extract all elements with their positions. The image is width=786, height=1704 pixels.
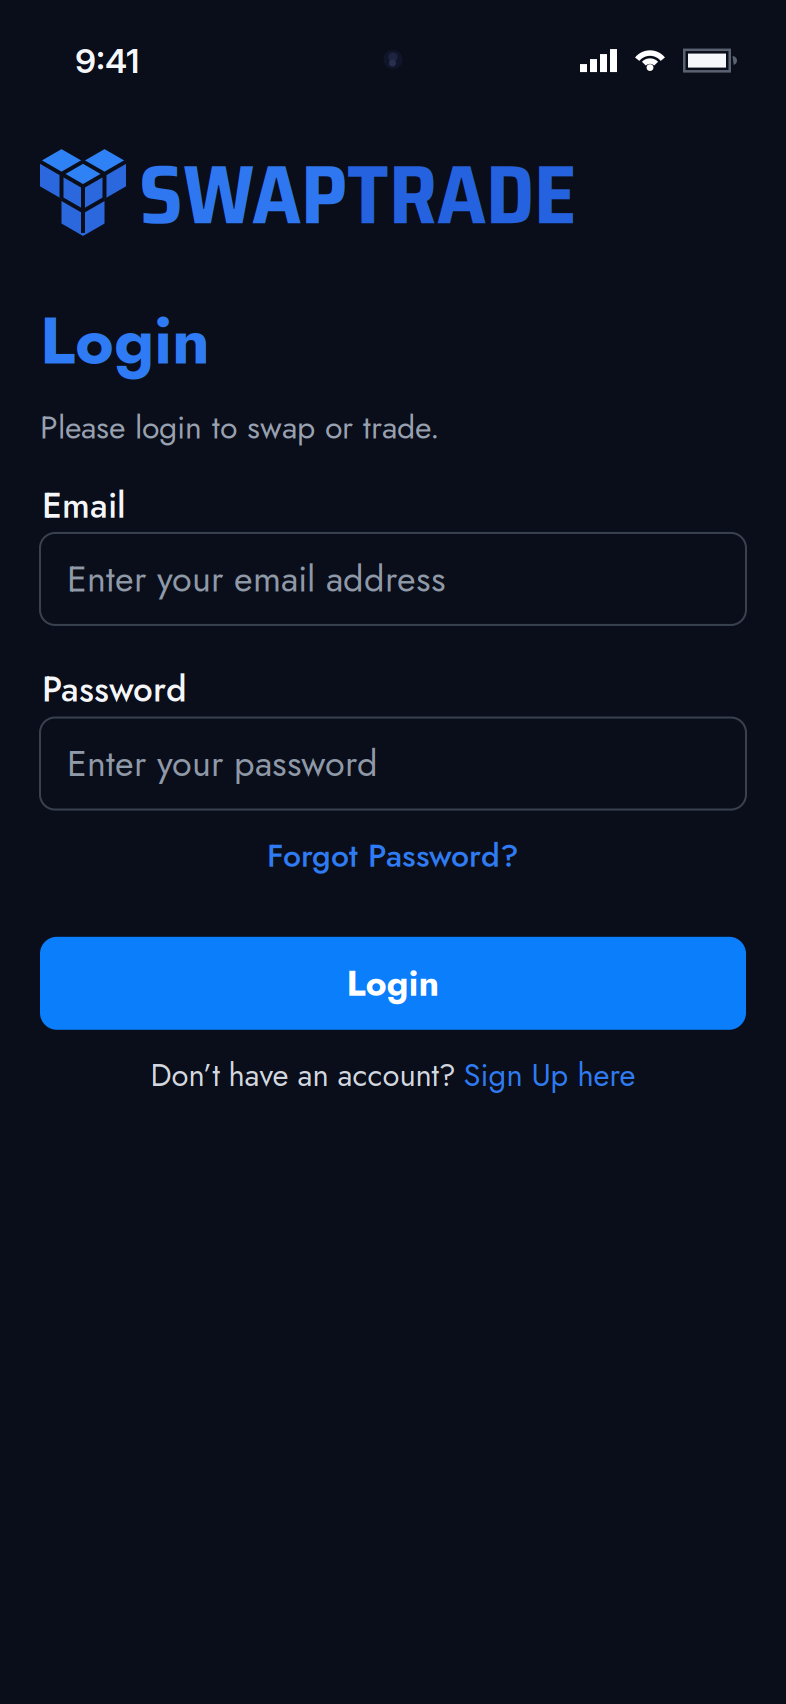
staticText: Password (42, 664, 187, 715)
staticText: Please login to swap or trade. (40, 404, 440, 450)
staticText: Email (42, 480, 126, 531)
staticText: Enter your password (67, 737, 378, 789)
staticText: Forgot Password? (267, 832, 519, 879)
staticText: Login (40, 293, 210, 388)
staticText: SWAP (139, 129, 347, 260)
staticText: Don’t have an account? (150, 1053, 455, 1098)
staticText: Login (346, 957, 439, 1009)
staticText: 9:41 (75, 40, 139, 81)
staticText: Enter your email address (67, 553, 446, 605)
staticText: Sign Up here (463, 1053, 635, 1098)
staticText: TRADE (347, 129, 577, 260)
